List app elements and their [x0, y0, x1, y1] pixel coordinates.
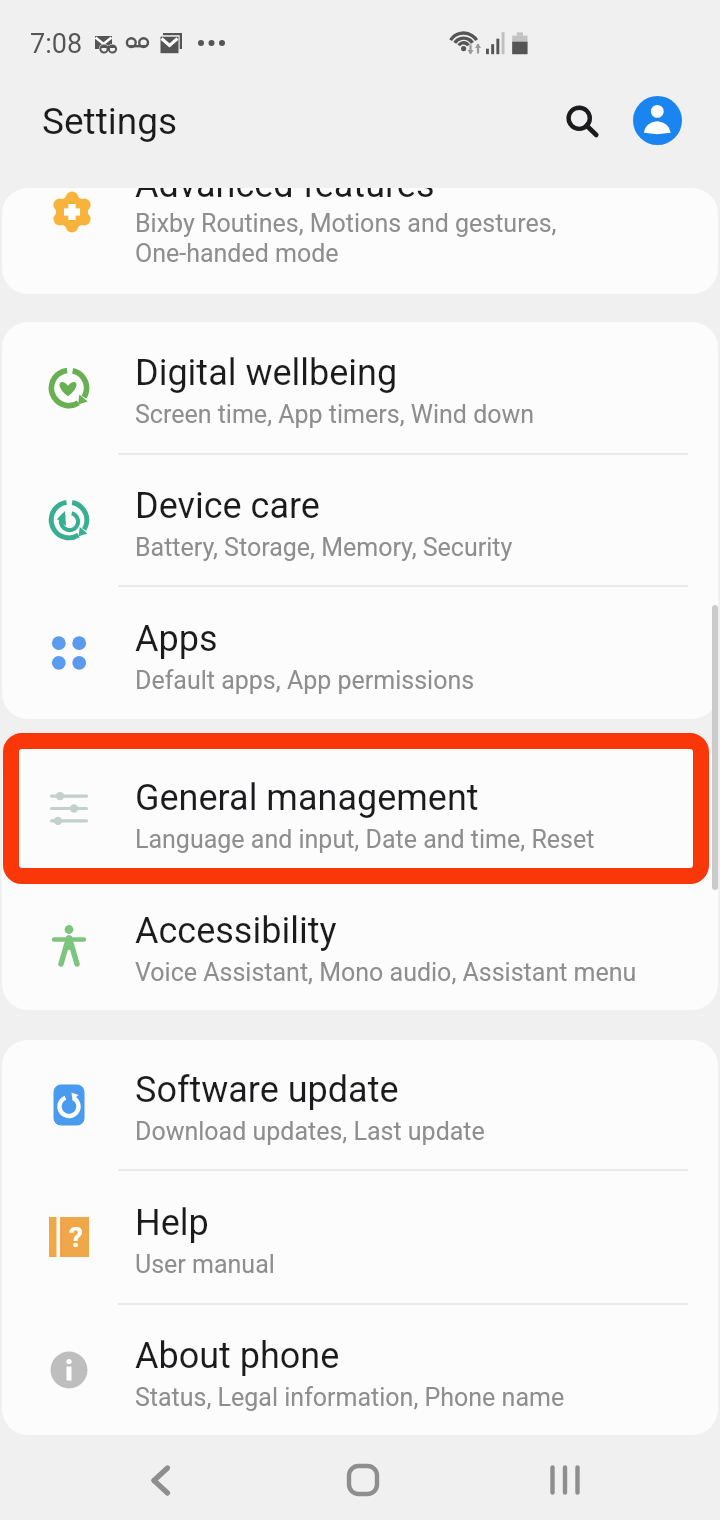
staticText: Screen time, App timers, Wind down: [135, 400, 535, 429]
staticText: Battery, Storage, Memory, Security: [135, 533, 513, 562]
button[interactable]: Account: [633, 96, 682, 145]
staticText: ?: [69, 1221, 83, 1254]
button[interactable]: Apps: [2, 587, 718, 719]
button[interactable]: ?: [2, 1171, 718, 1303]
staticText: Download updates, Last update: [135, 1117, 485, 1146]
button[interactable]: Software update: [2, 1040, 718, 1169]
button[interactable]: Back: [121, 1440, 201, 1520]
button[interactable]: Digital wellbeing: [2, 322, 718, 453]
button[interactable]: Home: [323, 1440, 403, 1520]
button[interactable]: General management: [2, 746, 718, 878]
staticText: Settings: [42, 100, 178, 143]
staticText: Advanced features: [135, 188, 435, 206]
staticText: Language and input, Date and time, Reset: [135, 825, 595, 854]
button[interactable]: Device care: [2, 455, 718, 585]
staticText: General management: [135, 777, 479, 819]
staticText: Bixby Routines, Motions and gestures, On…: [135, 209, 557, 268]
staticText: Accessibility: [135, 910, 337, 952]
staticText: Apps: [135, 618, 218, 660]
staticText: 7:08: [30, 28, 83, 60]
button[interactable]: Accessibility: [2, 880, 718, 1010]
button[interactable]: Search: [549, 88, 611, 150]
button[interactable]: About phone: [2, 1305, 718, 1435]
staticText: Device care: [135, 485, 320, 527]
staticText: Status, Legal information, Phone name: [135, 1383, 565, 1412]
staticText: Help: [135, 1202, 209, 1244]
staticText: Software update: [135, 1069, 399, 1111]
button[interactable]: Advanced features: [2, 188, 718, 270]
staticText: About phone: [135, 1335, 340, 1377]
staticText: Default apps, App permissions: [135, 666, 475, 695]
staticText: Voice Assistant, Mono audio, Assistant m…: [135, 958, 637, 987]
staticText: User manual: [135, 1250, 275, 1279]
button[interactable]: Recent apps: [525, 1440, 605, 1520]
staticText: Digital wellbeing: [135, 352, 398, 394]
